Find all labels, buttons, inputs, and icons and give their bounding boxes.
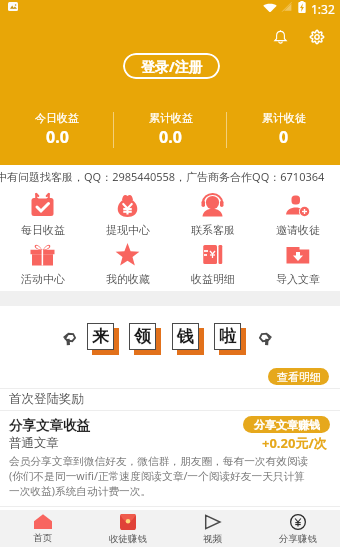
button[interactable]: 登录/注册: [123, 53, 220, 79]
staticText: 1:32: [311, 1, 335, 17]
button[interactable]: 每日收益: [0, 193, 85, 237]
staticText: 今日收益: [35, 111, 79, 125]
staticText: 活动中心: [21, 272, 65, 286]
staticText: 会员分享文章到微信好友，微信群，朋友圈，每有一次有效阅读(你们不是同一wifi/…: [9, 455, 314, 498]
button[interactable]: 分享赚钱: [255, 510, 340, 547]
staticText: 首页: [33, 532, 52, 544]
staticText: 0: [279, 126, 289, 147]
staticText: 收益明细: [191, 272, 235, 286]
staticText: 中有问题找客服，QQ：2985440558，广告商务合作QQ：6710364: [0, 169, 325, 184]
staticText: 视频: [203, 533, 222, 545]
staticText: 累计收徒: [262, 111, 306, 125]
staticText: 累计收益: [149, 111, 193, 125]
staticText: 提现中心: [106, 223, 150, 237]
staticText: 钱: [177, 326, 194, 347]
staticText: 分享赚钱: [279, 533, 317, 545]
button[interactable]: 今日收益: [0, 111, 114, 147]
button[interactable]: 首页: [0, 510, 85, 547]
staticText: 首次登陆奖励: [9, 391, 84, 407]
button[interactable]: 提现中心: [85, 193, 170, 237]
button[interactable]: 分享文章赚钱: [243, 416, 330, 433]
button[interactable]: Notifications: [270, 26, 291, 47]
staticText: 普通文章: [9, 435, 59, 451]
button[interactable]: 导入文章: [255, 242, 340, 286]
staticText: 我的收藏: [106, 272, 150, 286]
staticText: +0.20元/次: [262, 434, 327, 452]
button[interactable]: 收益明细: [170, 242, 255, 286]
staticText: 收徒赚钱: [109, 533, 147, 545]
button[interactable]: 累计收徒: [227, 111, 340, 147]
staticText: 导入文章: [276, 272, 320, 286]
staticText: 0.0: [159, 126, 182, 147]
button[interactable]: 邀请收徒: [255, 193, 340, 237]
staticText: 登录/注册: [141, 57, 203, 76]
button[interactable]: Settings: [306, 26, 327, 47]
staticText: 0.0: [46, 126, 69, 147]
button[interactable]: 视频: [170, 510, 255, 547]
staticText: 查看明细: [277, 370, 321, 384]
button[interactable]: 查看明细: [268, 368, 329, 385]
staticText: 来: [92, 326, 109, 347]
staticText: 分享文章赚钱: [254, 418, 320, 432]
button[interactable]: 我的收藏: [85, 242, 170, 286]
button[interactable]: 联系客服: [170, 193, 255, 237]
staticText: 分享文章收益: [9, 417, 90, 434]
staticText: 联系客服: [191, 223, 235, 237]
staticText: 每日收益: [21, 223, 65, 237]
button[interactable]: 累计收益: [114, 111, 227, 147]
staticText: 邀请收徒: [276, 223, 320, 237]
button[interactable]: 收徒赚钱: [85, 510, 170, 547]
staticText: 领: [134, 326, 151, 347]
button[interactable]: 活动中心: [0, 242, 85, 286]
staticText: 啦: [219, 326, 236, 347]
